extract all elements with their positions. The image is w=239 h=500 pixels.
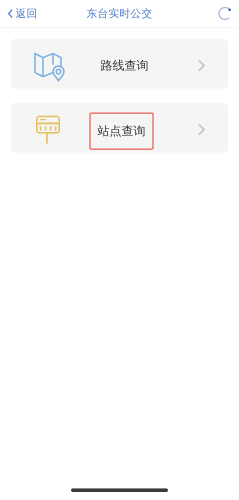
- button[interactable]: 刷新: [212, 0, 239, 26]
- button[interactable]: 站点查询: [11, 103, 228, 153]
- button[interactable]: 返回: [0, 1, 43, 26]
- staticText: 返回: [15, 7, 37, 20]
- button[interactable]: 路线查询: [11, 39, 228, 89]
- staticText: 东台实时公交: [86, 7, 152, 20]
- staticText: 站点查询: [97, 124, 145, 138]
- staticText: 路线查询: [100, 58, 148, 73]
